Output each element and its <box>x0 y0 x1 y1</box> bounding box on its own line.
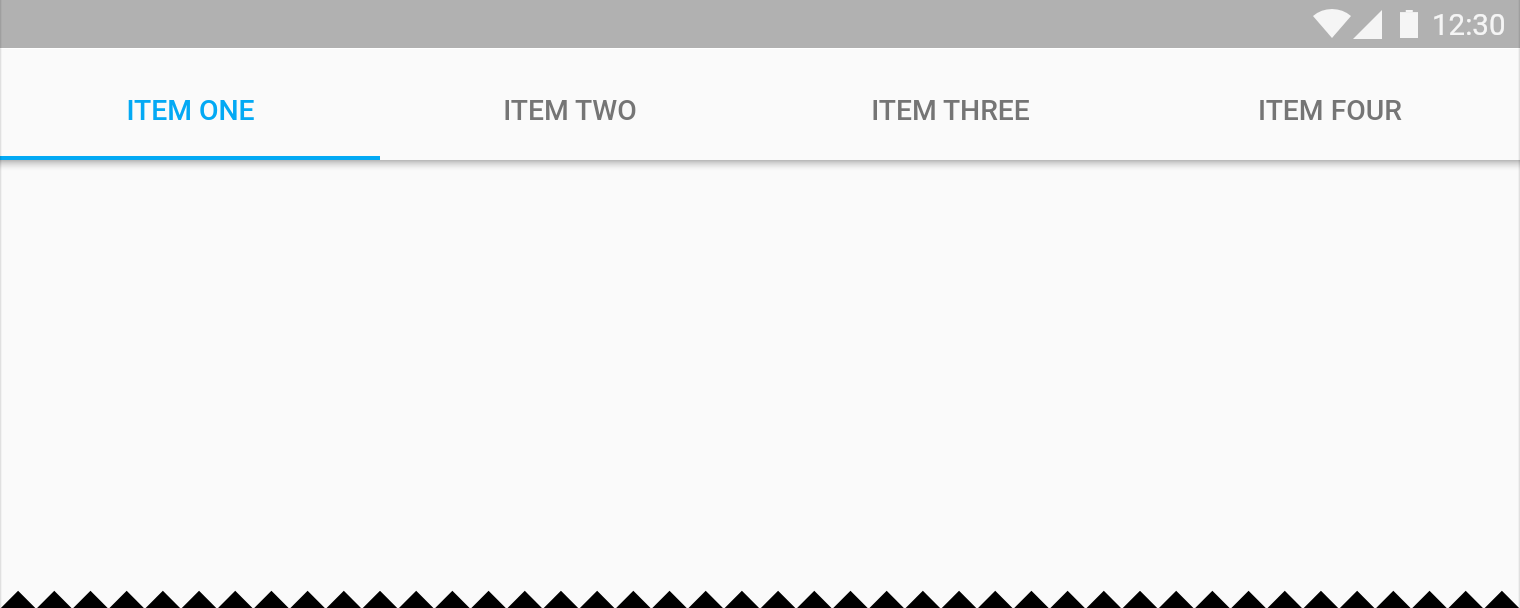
button[interactable]: ITEM ONE <box>0 49 380 160</box>
other: Battery <box>1400 10 1418 38</box>
other: Mobile signal <box>1353 10 1382 39</box>
staticText: ITEM TWO <box>503 94 637 127</box>
staticText: ITEM THREE <box>871 94 1030 127</box>
other: Wi-Fi signal <box>1313 9 1351 38</box>
staticText: 12:30 <box>1432 8 1506 43</box>
staticText: ITEM FOUR <box>1258 94 1402 127</box>
button[interactable]: ITEM FOUR <box>1140 49 1520 160</box>
button[interactable]: ITEM TWO <box>380 49 760 160</box>
staticText: ITEM ONE <box>126 94 255 127</box>
button[interactable]: ITEM THREE <box>760 49 1140 160</box>
button[interactable]: Wi-Fi signal <box>0 0 1520 48</box>
